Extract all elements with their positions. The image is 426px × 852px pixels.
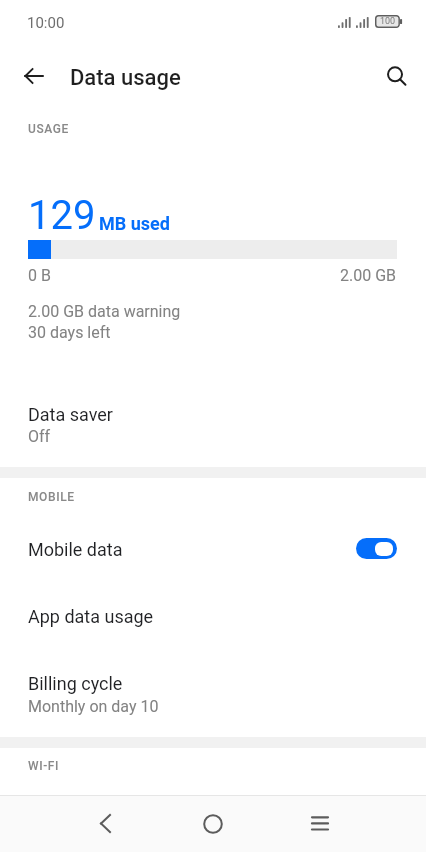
staticText: MB used (99, 213, 170, 234)
staticText: 2.00 GB (340, 266, 397, 285)
button[interactable]: Data saver (0, 391, 426, 455)
staticText: Data saver (28, 404, 113, 425)
button[interactable]: Mobile data (0, 523, 426, 575)
staticText: 129 (28, 192, 96, 239)
staticText: Off (28, 427, 51, 446)
staticText: 10:00 (27, 14, 65, 32)
staticText: Billing cycle (28, 673, 123, 694)
button[interactable]: Search (378, 58, 416, 96)
staticText: USAGE (28, 122, 69, 136)
staticText: Mobile data (28, 539, 123, 560)
button[interactable]: Billing cycle (0, 660, 426, 724)
staticText: Monthly on day 10 (28, 697, 159, 716)
staticText: 30 days left (28, 323, 111, 342)
button[interactable]: Home (185, 796, 240, 851)
staticText: App data usage (28, 606, 154, 627)
staticText: WI-FI (28, 759, 59, 773)
staticText: Data usage (70, 64, 181, 90)
button[interactable]: Back (78, 796, 133, 851)
button[interactable]: Mobile data, on (356, 538, 397, 559)
staticText: 100 (380, 16, 396, 27)
staticText: 0 B (28, 266, 51, 285)
staticText: MOBILE (28, 490, 75, 504)
button[interactable]: Navigate up (15, 57, 53, 95)
button[interactable]: Recent apps (292, 796, 347, 851)
staticText: 2.00 GB data warning (28, 302, 181, 321)
button[interactable]: App data usage (0, 589, 426, 639)
